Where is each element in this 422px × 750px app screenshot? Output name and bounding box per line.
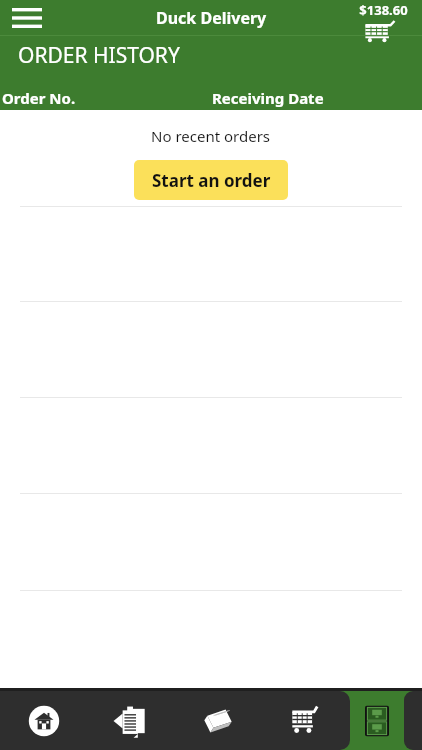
staticText: ORDER HISTORY [18, 41, 180, 70]
button[interactable]: Start an order [134, 160, 288, 200]
staticText: Receiving Date [212, 88, 324, 108]
button[interactable]: More [360, 691, 394, 750]
button[interactable]: Orders [87, 691, 174, 750]
button[interactable]: Shopping cart, total $138.60 [352, 0, 414, 44]
staticText: No recent orders [151, 126, 271, 146]
button[interactable]: More options [404, 691, 422, 750]
staticText: Duck Delivery [156, 7, 267, 29]
staticText: Order No. [2, 88, 76, 108]
button[interactable]: Home [0, 691, 87, 750]
button[interactable]: Cart [262, 691, 350, 750]
button[interactable]: Open navigation menu [9, 3, 45, 33]
staticText: $138.60 [359, 1, 408, 19]
button[interactable]: Catalog [174, 691, 262, 750]
staticText: Start an order [152, 169, 271, 192]
